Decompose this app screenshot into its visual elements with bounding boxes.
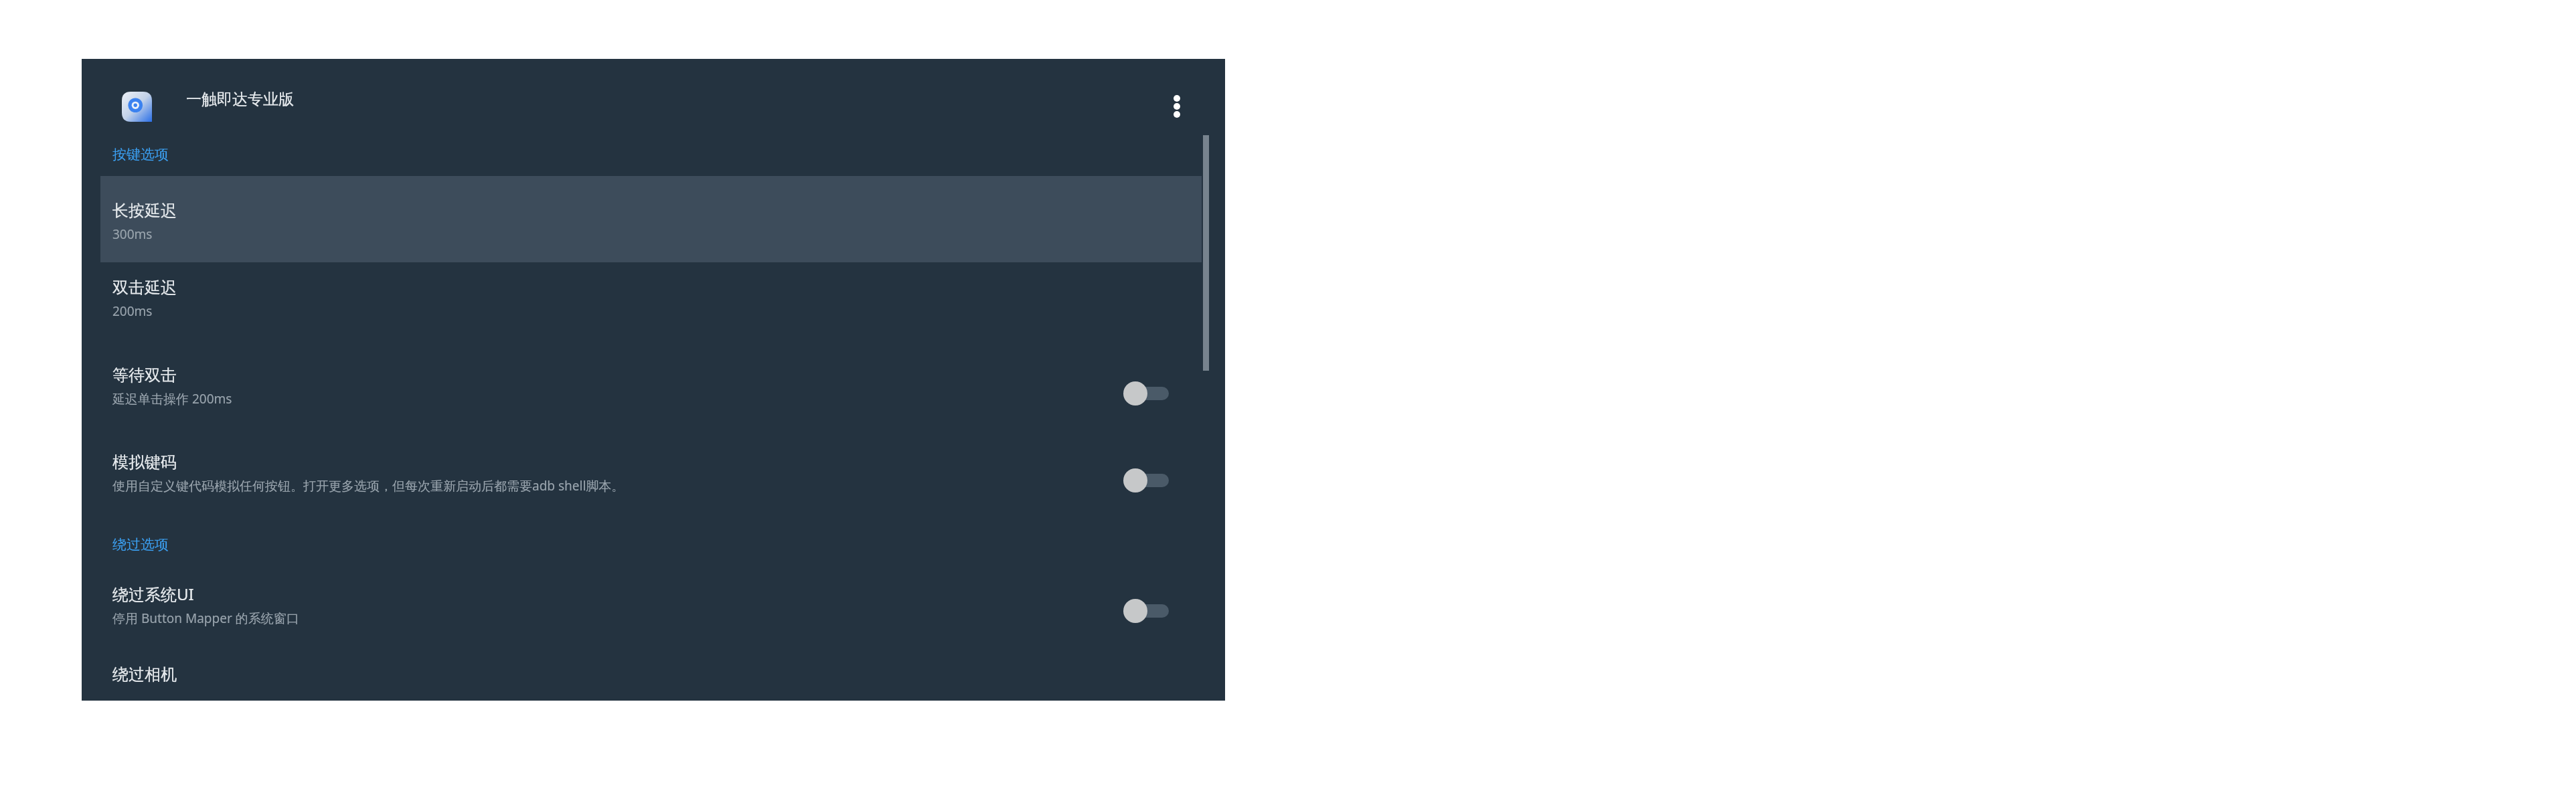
button[interactable] <box>100 176 1202 262</box>
button[interactable] <box>82 351 1225 436</box>
staticText: 一触即达专业版 <box>186 90 294 109</box>
staticText: 300ms <box>112 226 153 243</box>
button[interactable] <box>82 264 1225 351</box>
button[interactable]: More options <box>1157 78 1197 135</box>
staticText: 按键选项 <box>112 146 169 163</box>
staticText: 停用 Button Mapper 的系统窗口 <box>112 610 299 627</box>
button[interactable]: Toggle 模拟键码 <box>1121 464 1177 497</box>
button[interactable] <box>82 436 1225 523</box>
staticText: 模拟键码 <box>112 452 177 472</box>
staticText: 长按延迟 <box>112 201 177 221</box>
staticText: 等待双击 <box>112 365 177 385</box>
button[interactable]: Toggle 等待双击 <box>1121 377 1177 410</box>
staticText: 绕过系统UI <box>112 583 194 605</box>
button[interactable] <box>82 569 1225 654</box>
staticText: 使用自定义键代码模拟任何按钮。打开更多选项，但每次重新启动后都需要adb she… <box>112 477 625 495</box>
staticText: 绕过相机 <box>112 664 177 685</box>
button[interactable] <box>82 656 1225 701</box>
staticText: 延迟单击操作 200ms <box>112 390 232 408</box>
staticText: 200ms <box>112 302 153 320</box>
button[interactable] <box>82 176 1225 262</box>
button[interactable]: Toggle 绕过系统UI <box>1121 595 1177 627</box>
staticText: 双击延迟 <box>112 278 177 298</box>
staticText: 绕过选项 <box>112 536 169 553</box>
